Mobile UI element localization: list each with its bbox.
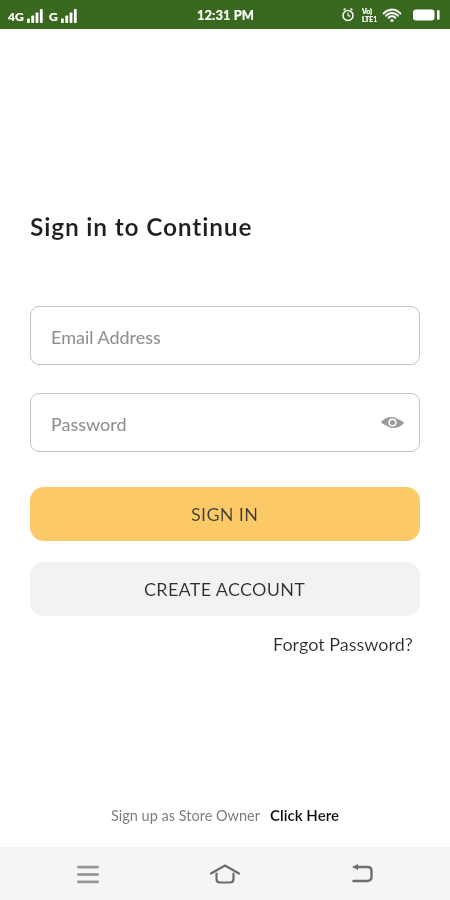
button[interactable]: SIGN IN [30, 487, 420, 541]
button[interactable]: Forgot Password? [273, 633, 413, 655]
button[interactable] [66, 851, 110, 895]
staticText: SIGN IN [191, 503, 259, 525]
staticText: Email Address [51, 326, 161, 348]
staticText: Sign up as Store Owner [111, 807, 261, 824]
staticText: Sign in to Continue [30, 212, 253, 241]
staticText: G [49, 9, 58, 23]
staticText: CREATE ACCOUNT [144, 578, 306, 600]
staticText: LTE1 [362, 15, 378, 23]
button[interactable]: Password [30, 393, 420, 452]
button[interactable]: Email Address [30, 306, 420, 365]
staticText: 12:31 PM [197, 7, 254, 23]
staticText: Password [51, 413, 127, 435]
staticText: Vo) [362, 7, 373, 15]
staticText: 4G [8, 9, 24, 23]
button[interactable]: Sign up as Store Owner [30, 806, 420, 824]
button[interactable] [203, 851, 247, 895]
button[interactable]: CREATE ACCOUNT [30, 562, 420, 616]
staticText: Click Here [270, 806, 340, 824]
button[interactable] [340, 851, 384, 895]
